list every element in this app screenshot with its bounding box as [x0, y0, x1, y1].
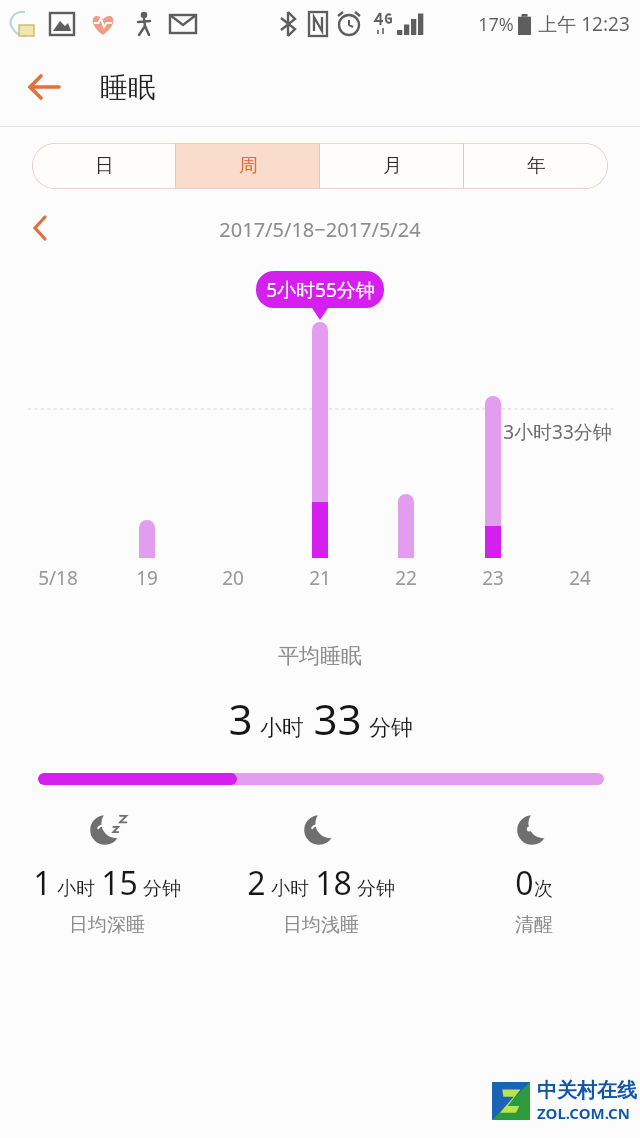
staticText: 日 [95, 154, 114, 178]
staticText: 19 [136, 565, 158, 591]
staticText: 小时 [260, 714, 304, 742]
button[interactable]: 0 [427, 805, 640, 937]
staticText: 5小时55分钟 [266, 277, 375, 303]
staticText: 33 [313, 690, 362, 747]
staticText: 1 [33, 861, 52, 905]
staticText: 分钟 [369, 714, 413, 742]
staticText: 睡眠 [100, 70, 156, 105]
staticText: 22 [395, 565, 417, 591]
button[interactable]: Back [16, 58, 74, 116]
staticText: 日均浅睡 [283, 913, 359, 937]
staticText: ZOL.COM.CN [537, 1103, 630, 1123]
staticText: 日均深睡 [69, 913, 145, 937]
staticText: 年 [527, 154, 546, 178]
staticText: 23 [482, 565, 504, 591]
button[interactable]: 周 [176, 143, 320, 189]
staticText: 2 [247, 861, 266, 905]
staticText: 17% [478, 12, 514, 37]
staticText: 分钟 [143, 877, 181, 901]
staticText: 月 [383, 154, 402, 178]
staticText: 21 [309, 565, 331, 591]
staticText: 3 [228, 690, 253, 747]
staticText: 清醒 [515, 913, 553, 937]
button[interactable]: 1 [0, 805, 214, 937]
staticText: 3小时33分钟 [503, 419, 612, 445]
button[interactable]: 5小时55分钟 [256, 271, 384, 308]
button[interactable]: 年 [464, 143, 608, 189]
staticText: 小时 [57, 877, 95, 901]
button[interactable]: 月 [320, 143, 464, 189]
staticText: 24 [569, 565, 591, 591]
button[interactable]: 日 [32, 143, 176, 189]
staticText: 周 [239, 154, 258, 178]
staticText: 小时 [271, 877, 309, 901]
staticText: 15 [101, 861, 138, 905]
staticText: 2017/5/18−2017/5/24 [219, 216, 421, 243]
staticText: 中关村在线 [537, 1078, 637, 1103]
staticText: 5/18 [38, 565, 78, 591]
staticText: 0 [515, 861, 534, 905]
staticText: 分钟 [357, 877, 395, 901]
staticText: 20 [222, 565, 244, 591]
staticText: 平均睡眠 [278, 643, 362, 669]
staticText: 次 [534, 877, 553, 901]
button[interactable]: Previous week [18, 206, 62, 250]
staticText: 上午 12:23 [538, 11, 630, 37]
button[interactable]: 2 [214, 805, 427, 937]
staticText: 18 [315, 861, 352, 905]
